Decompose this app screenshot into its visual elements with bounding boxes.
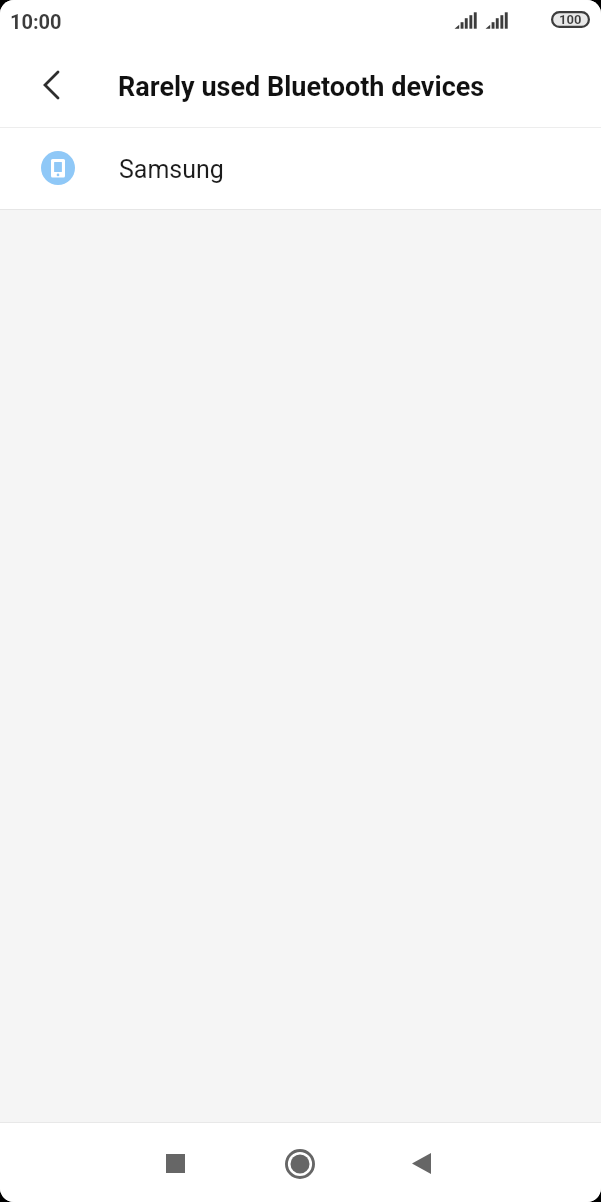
- staticText: Samsung: [119, 155, 224, 184]
- button[interactable]: Samsung: [0, 128, 601, 209]
- button[interactable]: Recent apps: [150, 1138, 201, 1189]
- button[interactable]: Home: [274, 1138, 325, 1189]
- button[interactable]: Back: [29, 63, 73, 107]
- button[interactable]: Back: [396, 1138, 447, 1189]
- staticText: Rarely used Bluetooth devices: [118, 71, 485, 103]
- staticText: 100: [559, 12, 582, 27]
- staticText: 10:00: [10, 10, 62, 33]
